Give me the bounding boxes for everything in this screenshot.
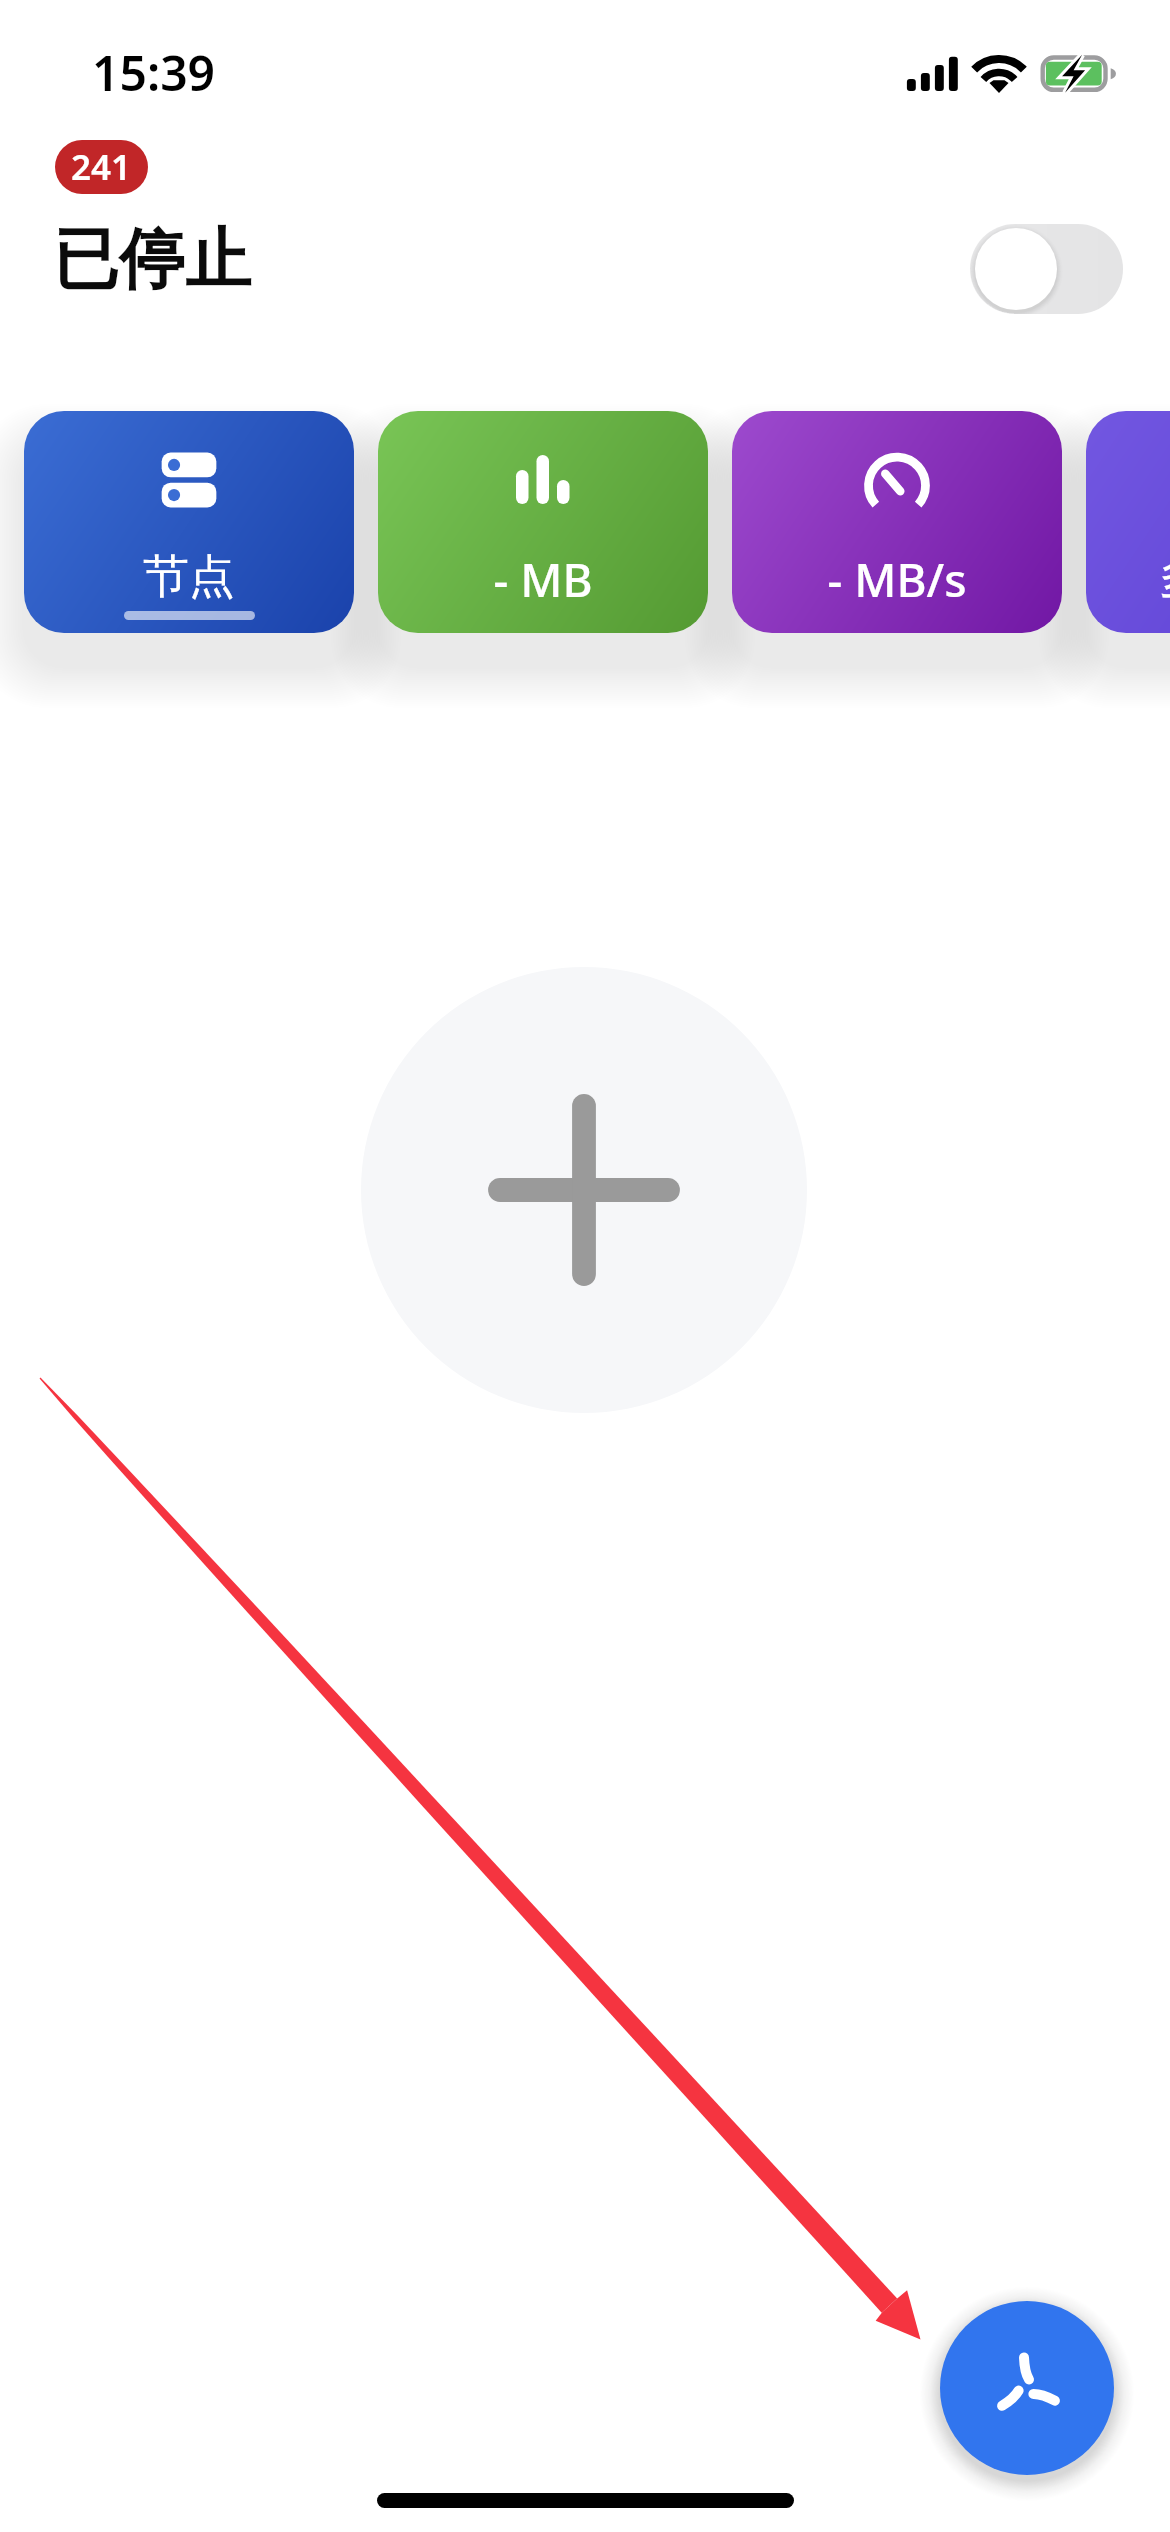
- button[interactable]: - MB: [378, 411, 708, 633]
- button[interactable]: 节点: [24, 411, 354, 633]
- button[interactable]: Add profile: [361, 967, 807, 1413]
- button[interactable]: 241: [55, 140, 148, 194]
- staticText: 241: [71, 143, 132, 191]
- staticText: 15:39: [92, 40, 216, 105]
- staticText: 多端同步: [1159, 548, 1170, 606]
- staticText: - MB/s: [827, 548, 967, 611]
- button[interactable]: 多端同步: [1086, 411, 1170, 633]
- button[interactable]: Toggle service: [970, 224, 1123, 314]
- button[interactable]: Start connection: [940, 2301, 1114, 2475]
- button[interactable]: - MB/s: [732, 411, 1062, 633]
- staticText: 已停止: [53, 218, 251, 301]
- staticText: 节点: [143, 548, 235, 606]
- staticText: - MB: [493, 548, 593, 611]
